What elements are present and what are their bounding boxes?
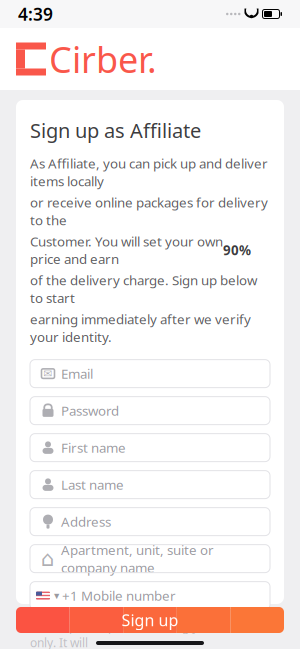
staticText: Sign up — [121, 609, 178, 631]
button[interactable]: ✉ — [30, 360, 270, 388]
staticText: 90% — [223, 241, 251, 259]
button[interactable]: Address — [30, 508, 270, 536]
staticText: of the delivery charge. Sign up below to… — [30, 271, 257, 307]
staticText: 4:39 — [18, 2, 53, 25]
button[interactable]: Password — [30, 397, 270, 425]
staticText: Attach profile photo showing your face o… — [30, 619, 244, 649]
button[interactable]: ⌂ — [30, 545, 270, 573]
staticText: earning immediately after we verify your… — [30, 310, 251, 346]
staticText: or receive online packages for delivery … — [30, 193, 268, 229]
staticText: ✉ — [43, 368, 52, 380]
staticText: Apartment, unit, suite or company name — [61, 541, 214, 576]
staticText: Last name — [61, 476, 124, 493]
button[interactable]: Sign up — [16, 607, 284, 633]
staticText: +1 Mobile number — [62, 587, 176, 604]
staticText: Email — [61, 365, 93, 382]
staticText: Address — [61, 513, 111, 530]
staticText: First name — [61, 439, 126, 456]
staticText: ▾ — [54, 590, 59, 602]
staticText: Customer. You will set your own price an… — [30, 232, 223, 268]
button[interactable]: Last name — [30, 471, 270, 499]
staticText: ⌂ — [41, 546, 55, 571]
button[interactable]: First name — [30, 434, 270, 462]
staticText: Cirber. — [49, 35, 157, 83]
staticText: As Affiliate, you can pick up and delive… — [30, 155, 268, 190]
staticText: Password — [61, 402, 119, 419]
staticText: Sign up as Affiliate — [30, 117, 201, 144]
button[interactable]: Mobile number — [30, 582, 270, 610]
